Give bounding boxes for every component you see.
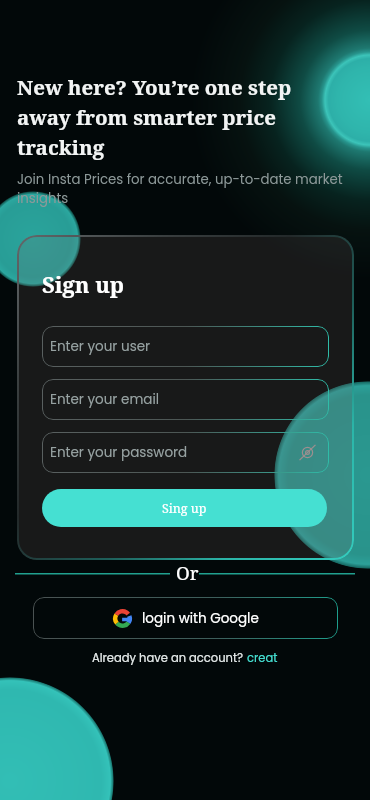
button[interactable]: Enter your email xyxy=(42,379,329,420)
staticText: login with Google xyxy=(142,609,259,628)
staticText: Enter your email xyxy=(50,390,160,409)
staticText: New here? You’re one step away from smar… xyxy=(17,73,292,161)
staticText: Or xyxy=(176,560,199,585)
button[interactable]: Sing up xyxy=(42,489,327,527)
staticText: Enter your user xyxy=(50,337,151,356)
staticText: Already have an account? xyxy=(92,650,247,666)
staticText: Sing up xyxy=(162,500,207,517)
staticText: Join Insta Prices for accurate, up-to-da… xyxy=(17,170,343,208)
button[interactable]: creat xyxy=(247,650,278,666)
button[interactable]: login with Google xyxy=(33,597,338,639)
staticText: Enter your password xyxy=(50,443,188,462)
staticText: Sign up xyxy=(42,269,125,299)
button[interactable]: Enter your user xyxy=(42,326,329,367)
button[interactable]: Enter your password xyxy=(42,432,329,473)
button[interactable]: Show password xyxy=(298,443,317,462)
